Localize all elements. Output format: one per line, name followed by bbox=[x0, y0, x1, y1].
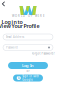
staticText: Log in to bbox=[1, 18, 22, 26]
staticText: View Your Profile bbox=[0, 22, 39, 30]
staticText: Email Address bbox=[6, 35, 24, 39]
staticText: W O R L D O F W I R E bbox=[12, 14, 44, 18]
button[interactable]: Log In bbox=[8, 62, 48, 69]
staticText: G bbox=[18, 76, 20, 80]
staticText: Log In bbox=[22, 63, 34, 68]
staticText: or bbox=[26, 69, 29, 73]
button[interactable]: G bbox=[13, 74, 43, 81]
button[interactable]: Forgot Password? bbox=[31, 52, 54, 55]
staticText: Forgot Password? bbox=[31, 52, 54, 55]
staticText: Password bbox=[6, 46, 18, 49]
button[interactable]: Back bbox=[0, 0, 8, 8]
staticText: Sign in with Google bbox=[22, 74, 39, 82]
